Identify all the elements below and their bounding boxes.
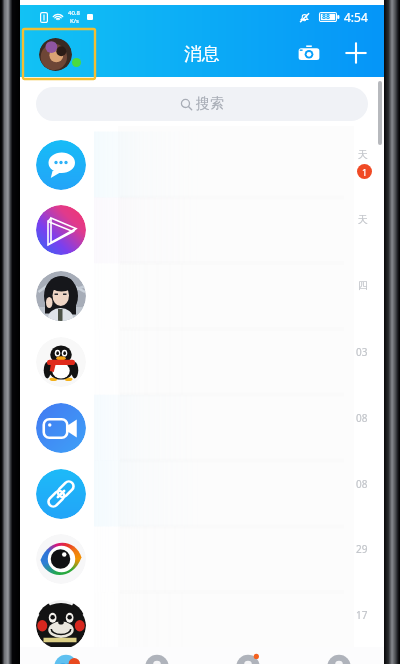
staticText: 40.8	[68, 9, 80, 17]
button[interactable]	[20, 592, 384, 658]
staticText: 08	[356, 477, 368, 491]
button[interactable]: Profile	[39, 38, 72, 71]
staticText: 88	[322, 12, 331, 22]
button[interactable]: Profile	[293, 647, 384, 664]
button[interactable]: Add	[342, 39, 370, 67]
staticText: 天	[358, 213, 368, 226]
staticText: 4:54	[344, 9, 368, 25]
button[interactable]	[20, 395, 384, 461]
staticText: 08	[356, 411, 368, 425]
staticText: K/s	[70, 17, 79, 25]
button[interactable]	[20, 329, 384, 395]
staticText: 天	[358, 148, 368, 161]
button[interactable]	[20, 461, 384, 527]
button[interactable]: Dynamic	[202, 647, 293, 664]
button[interactable]: 搜索	[36, 87, 368, 121]
button[interactable]: Messages	[20, 647, 111, 664]
button[interactable]	[20, 263, 384, 329]
button[interactable]: Camera	[295, 39, 323, 67]
staticText: 1	[362, 166, 368, 178]
button[interactable]	[20, 526, 384, 592]
button[interactable]	[20, 132, 384, 198]
staticText: 四	[358, 279, 368, 292]
staticText: 17	[356, 608, 368, 622]
staticText: 29	[356, 542, 368, 556]
staticText: 03	[356, 345, 368, 359]
staticText: 消息	[184, 43, 220, 66]
button[interactable]: Contacts	[111, 647, 202, 664]
button[interactable]	[20, 197, 384, 263]
staticText: 搜索	[196, 95, 224, 113]
